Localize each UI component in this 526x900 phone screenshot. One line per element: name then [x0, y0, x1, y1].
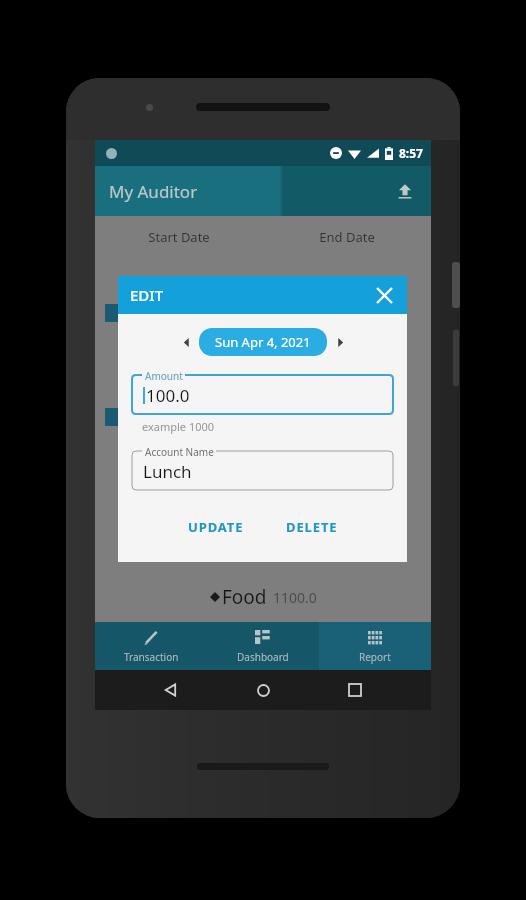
staticText: Sun Apr 4, 2021 [215, 333, 311, 351]
button[interactable]: Account Name [132, 444, 393, 490]
staticText: Amount [145, 369, 183, 383]
button[interactable]: Next day [331, 333, 349, 351]
button[interactable]: Amount [132, 368, 393, 414]
button[interactable]: Report [319, 622, 431, 670]
button[interactable]: Sun Apr 4, 2021 [199, 328, 327, 356]
staticText: Start Date [95, 228, 263, 246]
button[interactable]: Transaction [95, 622, 207, 670]
staticText: example 1000 [142, 419, 215, 434]
button[interactable]: Export [391, 177, 419, 205]
button[interactable]: UPDATE [178, 512, 254, 542]
staticText: Transaction [124, 650, 179, 664]
staticText: 100.0 [146, 384, 190, 407]
staticText: 1100.0 [273, 588, 317, 607]
button[interactable]: Recents [339, 674, 371, 706]
button[interactable]: Back [155, 674, 187, 706]
staticText: Dashboard [237, 650, 289, 664]
staticText: End Date [263, 228, 431, 246]
staticText: My Auditor [109, 180, 198, 203]
staticText: Report [359, 650, 391, 664]
button[interactable]: Previous day [177, 333, 195, 351]
staticText: Food [222, 584, 267, 610]
staticText: DELETE [286, 518, 338, 536]
staticText: EDIT [130, 285, 164, 305]
staticText: Lunch [143, 460, 192, 483]
button[interactable]: Home [247, 674, 279, 706]
staticText: Account Name [145, 445, 214, 459]
button[interactable]: DELETE [276, 512, 348, 542]
staticText: UPDATE [188, 518, 244, 536]
button[interactable]: Close [371, 282, 397, 308]
staticText: 8:57 [399, 145, 423, 161]
button[interactable]: Dashboard [207, 622, 319, 670]
